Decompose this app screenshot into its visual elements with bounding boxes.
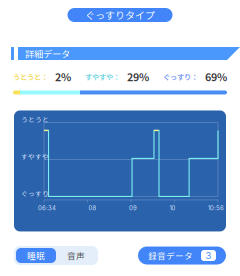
button[interactable]: 音声 — [56, 248, 96, 263]
staticText: 09 — [129, 204, 137, 212]
staticText: ぐっすり： — [163, 71, 198, 82]
staticText: 69% — [205, 69, 227, 84]
staticText: ぐっすりタイプ — [85, 8, 155, 22]
staticText: 3 — [205, 250, 211, 261]
staticText: 10:56 — [208, 204, 224, 212]
staticText: うとうと： — [13, 71, 48, 82]
staticText: 06:34 — [38, 204, 56, 212]
staticText: ぐっすり — [21, 189, 49, 198]
staticText: うとうと — [21, 115, 49, 124]
staticText: 2% — [55, 69, 71, 84]
staticText: 睡眠 — [27, 249, 45, 262]
staticText: 29% — [127, 69, 149, 84]
staticText: 08 — [88, 204, 96, 212]
staticText: 音声 — [67, 249, 85, 262]
staticText: 10 — [169, 204, 175, 212]
staticText: すやすや： — [85, 71, 120, 82]
staticText: 録音データ — [148, 249, 193, 262]
button[interactable]: 睡眠 — [16, 248, 56, 263]
button[interactable]: 録音データ — [138, 246, 226, 264]
staticText: すやすや — [21, 152, 49, 161]
staticText: 詳細データ — [25, 47, 70, 60]
button[interactable]: ぐっすりタイプ — [67, 8, 172, 22]
